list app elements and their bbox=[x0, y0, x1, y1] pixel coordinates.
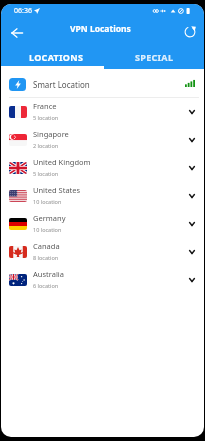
staticText: Smart Location bbox=[33, 79, 90, 90]
button[interactable]: Singapore bbox=[1, 126, 204, 154]
staticText: United States bbox=[33, 185, 81, 195]
staticText: 2 location bbox=[33, 142, 59, 149]
staticText: Germany bbox=[33, 213, 66, 223]
staticText: 10 location bbox=[33, 198, 62, 205]
staticText: 5 location bbox=[33, 170, 59, 177]
button[interactable]: Refresh bbox=[179, 21, 201, 43]
button[interactable]: LOCATIONS bbox=[7, 45, 105, 68]
button[interactable]: Canada bbox=[1, 238, 204, 266]
staticText: United Kingdom bbox=[33, 157, 91, 167]
staticText: 6 location bbox=[33, 282, 59, 289]
button[interactable]: Back bbox=[6, 22, 28, 44]
staticText: LOCATIONS bbox=[29, 51, 84, 63]
button[interactable]: United States bbox=[1, 182, 204, 210]
staticText: France bbox=[33, 101, 57, 111]
staticText: Canada bbox=[33, 241, 60, 251]
staticText: VPN Locations bbox=[70, 23, 131, 35]
button[interactable]: United Kingdom bbox=[1, 154, 204, 182]
button[interactable]: Australia bbox=[1, 266, 204, 294]
staticText: 5 location bbox=[33, 114, 59, 121]
staticText: 10 location bbox=[33, 226, 62, 233]
button[interactable]: France bbox=[1, 98, 204, 126]
staticText: 8 location bbox=[33, 254, 59, 261]
staticText: 06:36 bbox=[14, 6, 32, 16]
staticText: SPECIAL bbox=[135, 51, 174, 63]
button[interactable]: Germany bbox=[1, 210, 204, 238]
staticText: Singapore bbox=[33, 129, 69, 139]
button[interactable]: SPECIAL bbox=[105, 45, 204, 68]
staticText: Australia bbox=[33, 269, 64, 279]
button[interactable]: Smart Location bbox=[1, 69, 204, 97]
